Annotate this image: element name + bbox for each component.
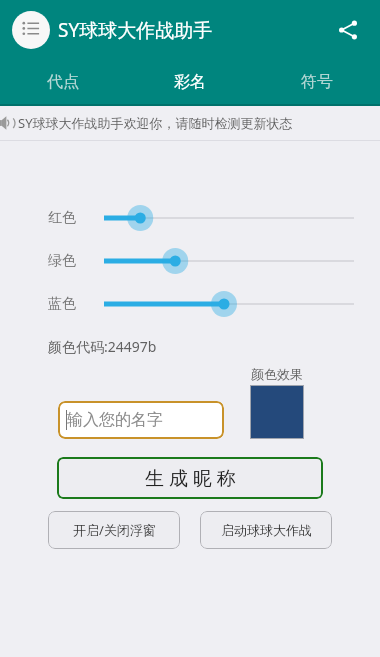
button[interactable]: 彩名 bbox=[126, 60, 253, 104]
staticText: 彩名 bbox=[174, 72, 206, 92]
button[interactable]: Share bbox=[330, 12, 366, 48]
staticText: 启动球球大作战 bbox=[221, 522, 312, 538]
button[interactable]: 输入您的名字 bbox=[58, 401, 224, 439]
staticText: SY球球大作战助手 bbox=[58, 17, 213, 43]
staticText: 输入您的名字 bbox=[67, 410, 163, 430]
button[interactable]: 启动球球大作战 bbox=[200, 511, 332, 549]
button[interactable]: 生 成 昵 称 bbox=[57, 457, 323, 499]
staticText: 红色 bbox=[48, 209, 90, 227]
staticText: 代点 bbox=[47, 72, 79, 92]
button[interactable]: 代点 bbox=[0, 60, 126, 104]
button[interactable]: 开启/关闭浮窗 bbox=[48, 511, 180, 549]
staticText: 蓝色 bbox=[48, 295, 90, 313]
button[interactable] bbox=[104, 248, 354, 274]
button[interactable] bbox=[104, 291, 354, 317]
button[interactable]: Menu bbox=[12, 11, 50, 49]
staticText: SY球球大作战助手欢迎你，请随时检测更新状态 bbox=[18, 114, 293, 132]
button[interactable]: 符号 bbox=[253, 60, 380, 104]
staticText: 符号 bbox=[301, 72, 333, 92]
staticText: 颜色效果 bbox=[251, 366, 303, 382]
button[interactable]: SY球球大作战助手欢迎你，请随时检测更新状态 bbox=[0, 106, 380, 140]
staticText: 绿色 bbox=[48, 252, 90, 270]
staticText: 生 成 昵 称 bbox=[145, 465, 236, 491]
staticText: 颜色代码:24497b bbox=[48, 337, 157, 356]
staticText: 开启/关闭浮窗 bbox=[73, 521, 156, 539]
button[interactable] bbox=[104, 205, 354, 231]
